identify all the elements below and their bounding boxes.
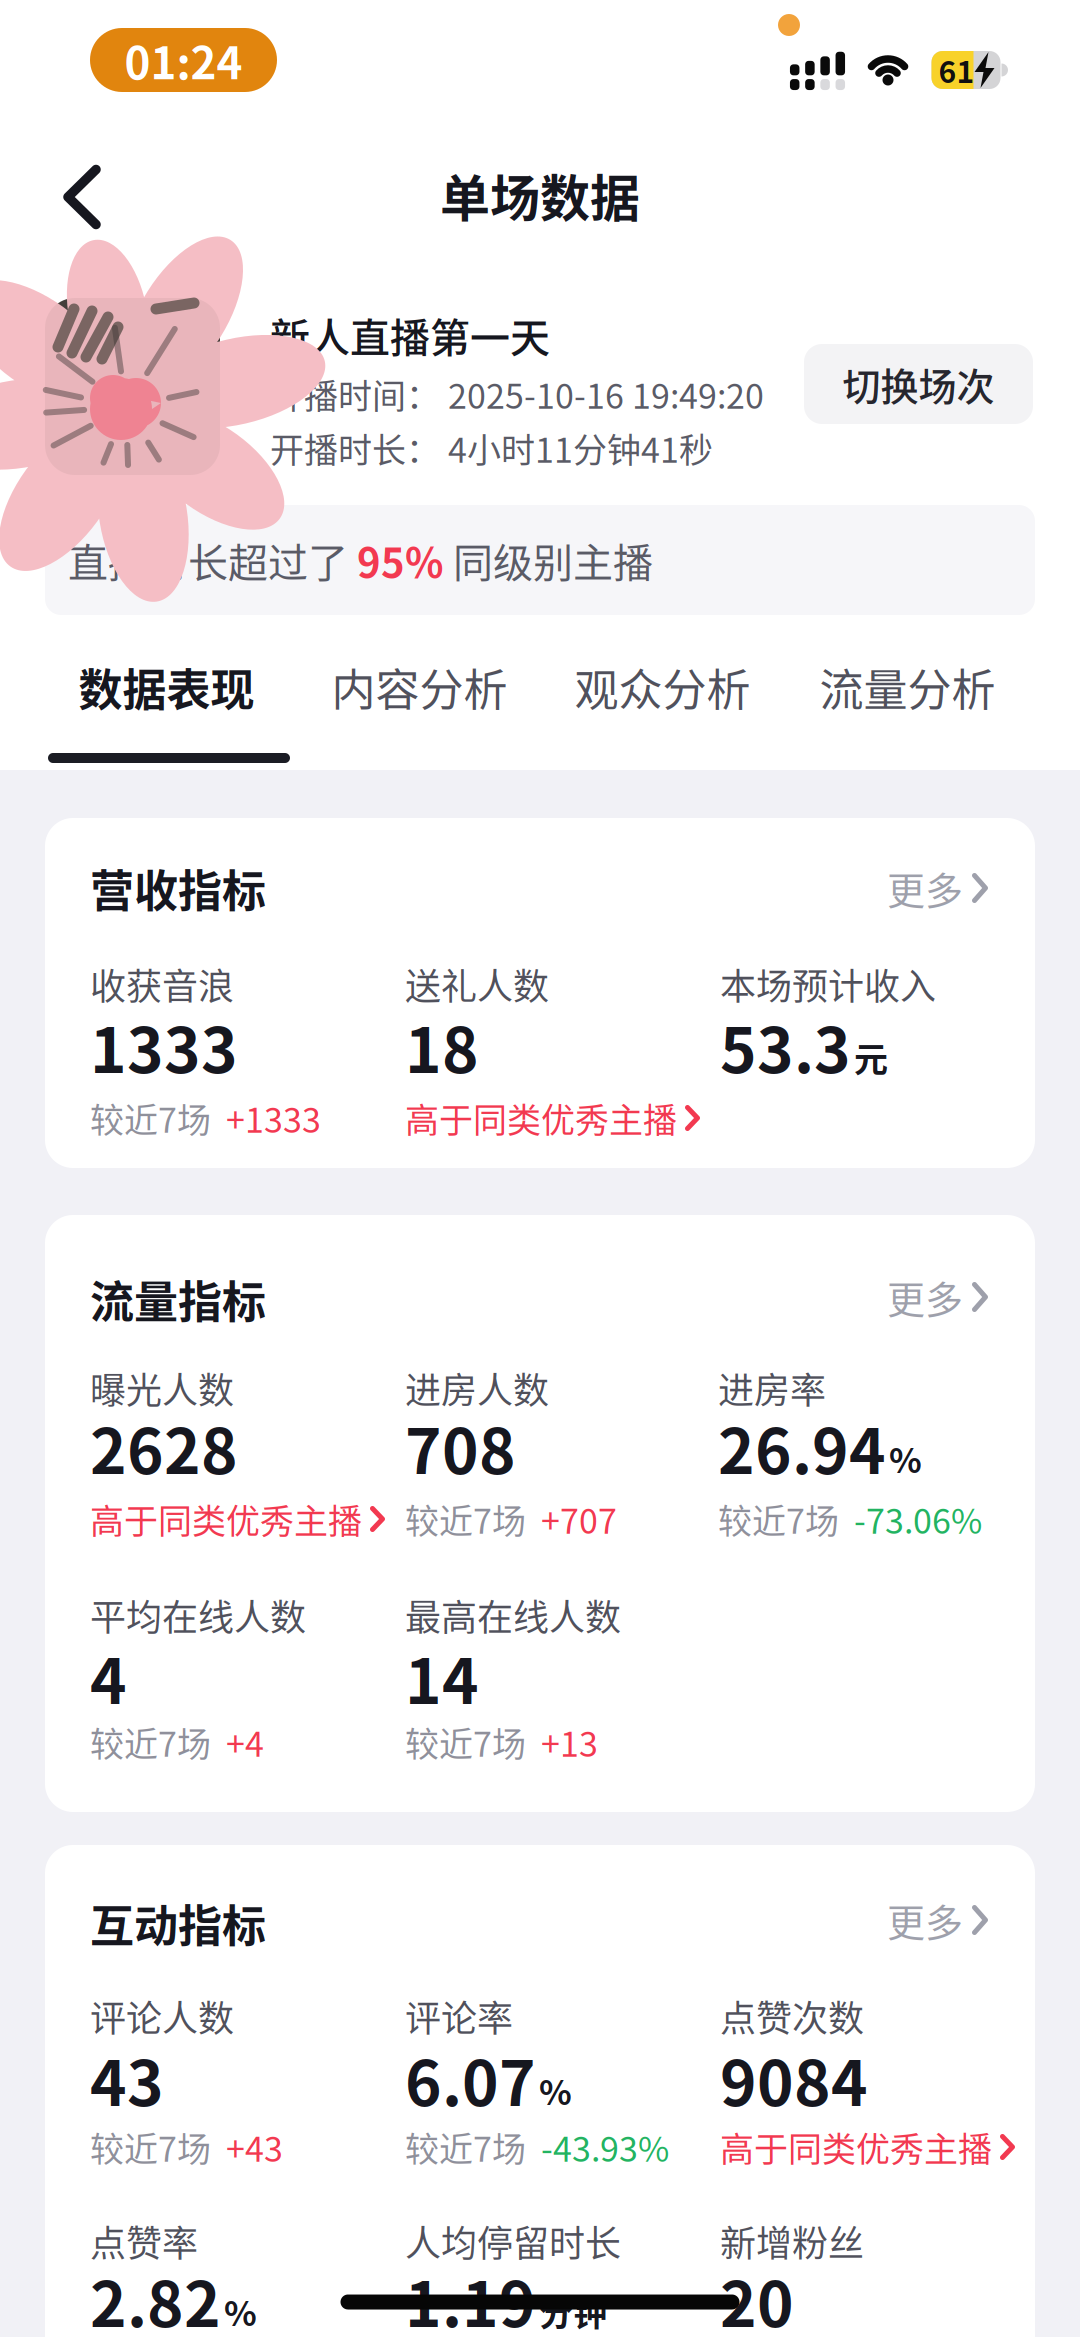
button[interactable]: 更多	[887, 1269, 988, 1324]
staticText: 01:24	[124, 28, 242, 92]
staticText: 1333	[90, 1001, 238, 1091]
staticText: 新增粉丝	[720, 2215, 864, 2267]
staticText: 最高在线人数	[405, 1589, 621, 1641]
staticText: 较近7场	[405, 1494, 526, 1544]
staticText: 开播时间： 2025-10-16 19:49:20	[270, 369, 764, 419]
staticText: 流量分析	[819, 655, 995, 719]
button[interactable]: 内容分析	[331, 655, 507, 719]
staticText: +707	[541, 1494, 617, 1544]
button[interactable]: 观众分析	[574, 655, 750, 719]
button[interactable]: 数据表现	[78, 655, 254, 719]
staticText: 14	[405, 1632, 479, 1722]
staticText: 单场数据	[440, 159, 640, 231]
staticText: 1.19	[405, 2255, 536, 2337]
staticText: 更多	[887, 860, 963, 915]
staticText: 开播时长： 4小时11分钟41秒	[270, 423, 713, 473]
staticText: 较近7场	[405, 2122, 526, 2172]
staticText: 2628	[90, 1402, 238, 1492]
button[interactable]: 更多	[887, 1892, 988, 1947]
staticText: 较近7场	[718, 1494, 839, 1544]
staticText: 53.3	[720, 1001, 851, 1091]
staticText: 评论人数	[90, 1990, 234, 2042]
staticText: 曝光人数	[90, 1362, 234, 1414]
staticText: 本场预计收入	[720, 958, 936, 1010]
staticText: 送礼人数	[405, 958, 549, 1010]
staticText: +1333	[226, 1093, 321, 1143]
staticText: %	[539, 2066, 572, 2115]
staticText: 更多	[887, 1269, 963, 1324]
staticText: 高于同类优秀主播	[720, 2122, 992, 2172]
staticText: +43	[226, 2122, 283, 2172]
staticText: 切换场次	[842, 356, 994, 411]
button[interactable]: 高于同类优秀主播	[90, 1494, 385, 1544]
staticText: -43.93%	[541, 2122, 669, 2172]
staticText: 直播时长超过了	[68, 531, 357, 589]
staticText: 流量指标	[90, 1267, 266, 1331]
staticText: 点赞次数	[720, 1990, 864, 2042]
staticText: 9084	[720, 2034, 868, 2124]
staticText: 95%	[357, 531, 444, 589]
button[interactable]: Back	[63, 164, 101, 229]
staticText: 评论率	[405, 1990, 513, 2042]
staticText: 人均停留时长	[405, 2215, 621, 2267]
staticText: %	[224, 2287, 257, 2336]
staticText: 内容分析	[331, 655, 507, 719]
button[interactable]: 切换场次	[804, 344, 1033, 424]
button[interactable]: 流量分析	[819, 655, 995, 719]
staticText: -73.06%	[854, 1494, 982, 1544]
staticText: 元	[854, 1033, 888, 1082]
staticText: 较近7场	[90, 2122, 211, 2172]
staticText: 708	[405, 1402, 516, 1492]
staticText: 较近7场	[90, 1093, 211, 1143]
staticText: 互动指标	[90, 1891, 266, 1955]
button[interactable]: 更多	[887, 860, 988, 915]
staticText: 新人直播第一天	[270, 306, 550, 364]
staticText: 高于同类优秀主播	[405, 1093, 677, 1143]
staticText: 分钟	[539, 2287, 607, 2336]
staticText: 较近7场	[405, 1717, 526, 1767]
staticText: %	[889, 1434, 922, 1483]
button[interactable]: 高于同类优秀主播	[405, 1093, 700, 1143]
staticText: 观众分析	[574, 655, 750, 719]
staticText: 6.07	[405, 2034, 536, 2124]
staticText: 点赞率	[90, 2215, 198, 2267]
staticText: 收获音浪	[90, 958, 234, 1010]
button[interactable]: 高于同类优秀主播	[720, 2122, 1015, 2172]
staticText: 较近7场	[90, 1717, 211, 1767]
staticText: +13	[541, 1717, 598, 1767]
staticText: 数据表现	[78, 655, 254, 719]
staticText: +4	[226, 1717, 264, 1767]
staticText: 同级别主播	[444, 531, 653, 589]
staticText: 进房人数	[405, 1362, 549, 1414]
staticText: 4	[90, 1632, 127, 1722]
staticText: 营收指标	[90, 856, 266, 920]
staticText: 26.94	[718, 1402, 886, 1492]
staticText: 更多	[887, 1892, 963, 1947]
staticText: 18	[405, 1001, 479, 1091]
staticText: 进房率	[718, 1362, 826, 1414]
staticText: 高于同类优秀主播	[90, 1494, 362, 1544]
staticText: 平均在线人数	[90, 1589, 306, 1641]
staticText: 43	[90, 2034, 164, 2124]
staticText: 20	[720, 2255, 794, 2337]
staticText: 61	[938, 48, 974, 92]
staticText: 2.82	[90, 2255, 221, 2337]
